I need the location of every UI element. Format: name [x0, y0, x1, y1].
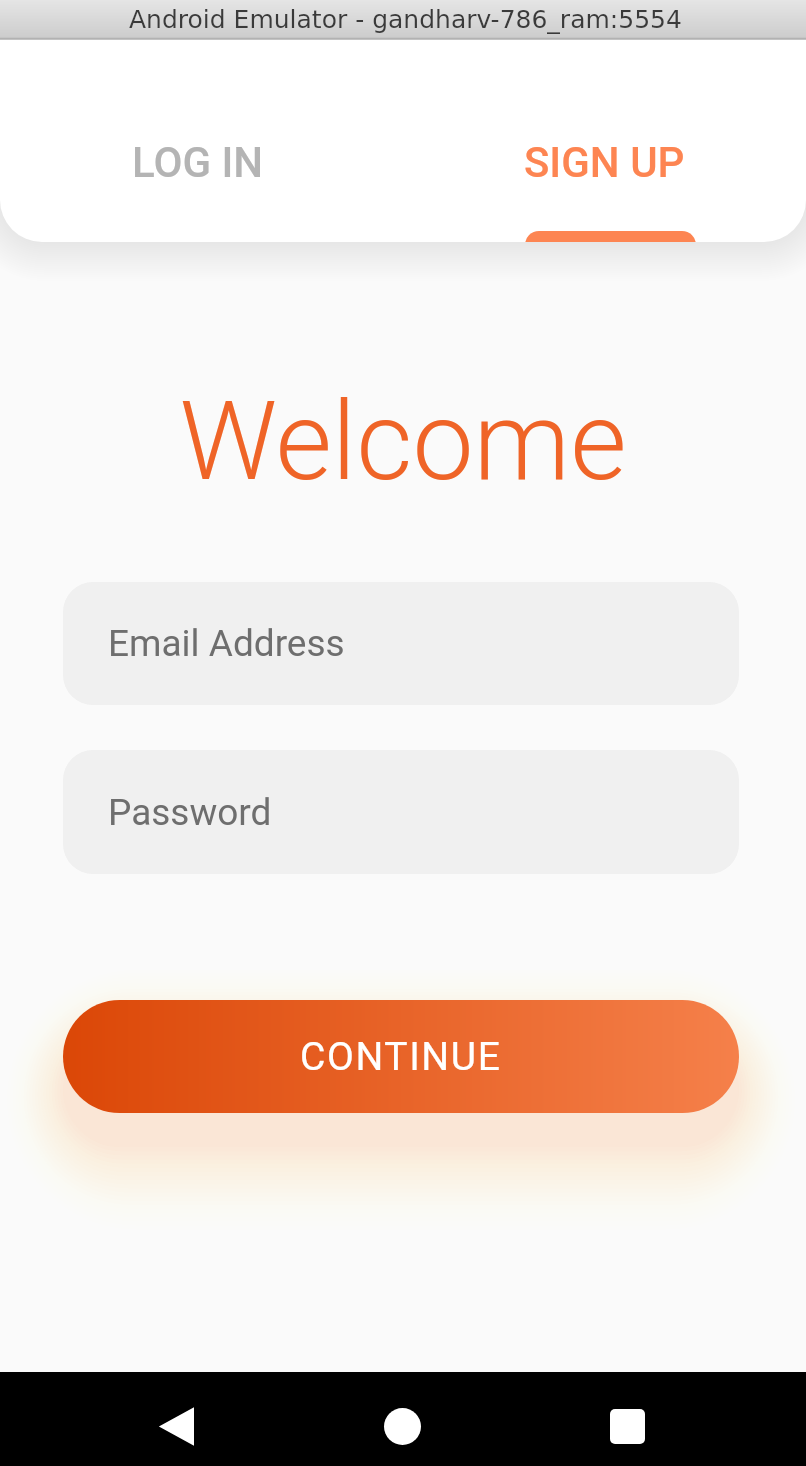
staticText: Android Emulator - gandharv-786_ram:5554 [129, 5, 682, 34]
staticText: Password [108, 791, 272, 834]
button[interactable]: Email Address [63, 582, 739, 705]
button[interactable]: SIGN UP [403, 39, 806, 242]
staticText: Email Address [108, 622, 345, 665]
button[interactable]: LOG IN [0, 39, 403, 242]
staticText: LOG IN [132, 138, 264, 187]
staticText: Welcome [179, 378, 627, 506]
staticText: CONTINUE [300, 1034, 502, 1080]
button[interactable]: CONTINUE [63, 1000, 739, 1113]
button[interactable]: Password [63, 750, 739, 874]
button[interactable]: Home [346, 1383, 458, 1466]
button[interactable]: Back [121, 1383, 233, 1466]
staticText: SIGN UP [524, 138, 685, 187]
button[interactable]: Recent apps [571, 1383, 683, 1466]
